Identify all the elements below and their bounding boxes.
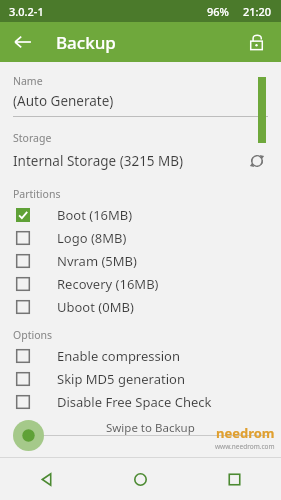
button[interactable]: Swipe to Backup xyxy=(13,420,44,451)
button[interactable]: (Auto Generate) xyxy=(0,92,281,117)
staticText: Boot (16MB) xyxy=(57,206,133,224)
staticText: www.needrom.com xyxy=(215,442,275,451)
staticText: Nvram (5MB) xyxy=(57,252,137,270)
staticText: Name xyxy=(13,74,43,88)
button[interactable]: Disable Free Space Check xyxy=(0,390,281,413)
staticText: Logo (8MB) xyxy=(57,229,127,247)
staticText: 21:20 xyxy=(243,4,272,19)
staticText: Recovery (16MB) xyxy=(57,275,159,293)
staticText: Enable compression xyxy=(57,347,181,365)
staticText: Disable Free Space Check xyxy=(57,393,212,411)
staticText: (Auto Generate) xyxy=(13,92,114,110)
button[interactable]: Skip MD5 generation xyxy=(0,367,281,390)
staticText: Storage xyxy=(13,131,52,145)
button[interactable]: Recents xyxy=(187,458,281,500)
button[interactable]: Refresh xyxy=(243,149,271,173)
button[interactable]: Boot (16MB) xyxy=(0,203,281,226)
button[interactable]: Nvram (5MB) xyxy=(0,249,281,272)
button[interactable]: Unlock xyxy=(239,25,273,59)
button[interactable]: Enable compression xyxy=(0,344,281,367)
staticText: needrom xyxy=(216,424,275,442)
staticText: 3.0.2-1 xyxy=(9,4,44,19)
staticText: Options xyxy=(13,328,53,342)
button[interactable]: Back xyxy=(6,25,40,59)
staticText: Uboot (0MB) xyxy=(57,298,134,316)
button[interactable]: Recovery (16MB) xyxy=(0,272,281,295)
button[interactable]: Internal Storage (3215 MB) xyxy=(0,152,243,170)
staticText: Skip MD5 generation xyxy=(57,370,185,388)
button[interactable]: Back xyxy=(0,458,93,500)
staticText: Swipe to Backup xyxy=(106,420,195,436)
button[interactable]: Uboot (0MB) xyxy=(0,295,281,318)
button[interactable]: Home xyxy=(93,458,187,500)
button[interactable]: Logo (8MB) xyxy=(0,226,281,249)
staticText: Backup xyxy=(56,31,116,54)
staticText: 96% xyxy=(207,4,229,19)
staticText: Internal Storage (3215 MB) xyxy=(13,152,184,170)
staticText: Partitions xyxy=(13,187,61,201)
